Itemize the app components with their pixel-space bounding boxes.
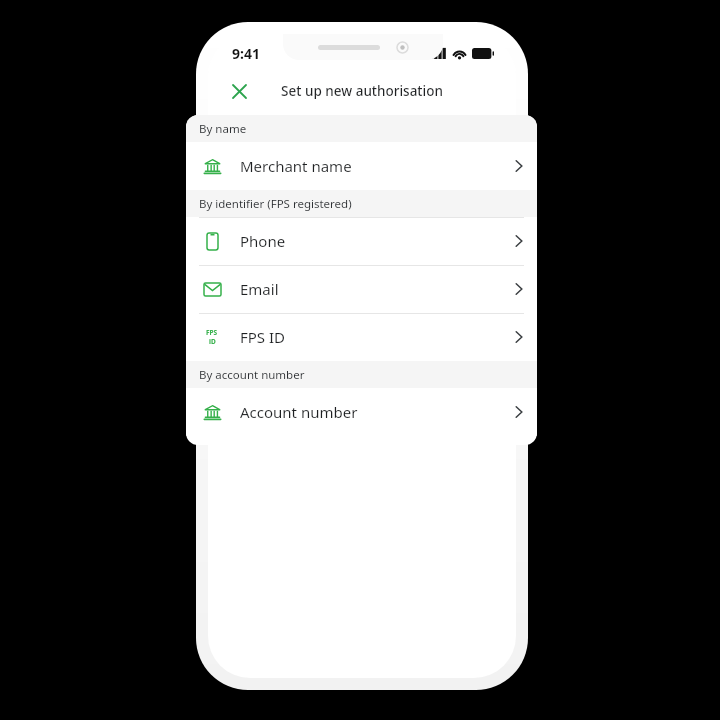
staticText: Merchant name	[240, 156, 352, 176]
button[interactable]: Account number	[186, 388, 537, 436]
staticText: iD	[209, 337, 216, 346]
button[interactable]: Phone	[186, 217, 537, 265]
button[interactable]: Merchant name	[186, 142, 537, 190]
button[interactable]: Close	[222, 74, 256, 108]
button[interactable]: Email	[186, 265, 537, 313]
staticText: Set up new authorisation	[281, 82, 443, 100]
button[interactable]: FPS	[186, 313, 537, 361]
staticText: Phone	[240, 231, 286, 251]
staticText: By name	[199, 121, 247, 137]
staticText: Account number	[240, 402, 358, 422]
staticText: Email	[240, 279, 279, 299]
staticText: By account number	[199, 367, 305, 383]
staticText: 9:41	[232, 44, 260, 63]
staticText: FPS	[206, 328, 218, 337]
staticText: FPS ID	[240, 327, 286, 347]
staticText: By identifier (FPS registered)	[199, 196, 352, 212]
